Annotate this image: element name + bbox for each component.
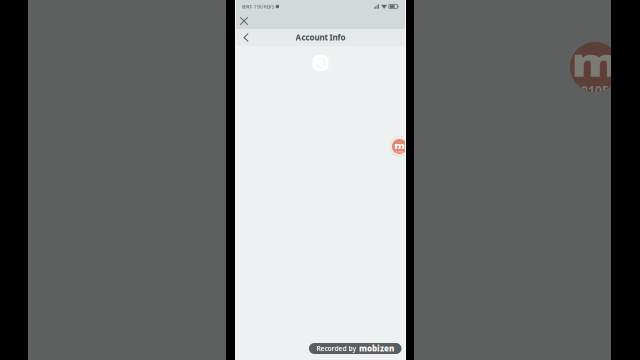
button[interactable]: Back <box>238 29 254 46</box>
staticText: 8:41 <box>242 3 252 10</box>
staticText: Account Info <box>295 32 345 43</box>
staticText: 0105 <box>581 82 609 98</box>
staticText: m <box>574 34 615 89</box>
staticText: Recorded by <box>316 344 356 353</box>
button[interactable]: Mobizen recorder <box>389 136 410 157</box>
staticText: 190 KB/s <box>254 3 275 10</box>
button[interactable]: Close <box>236 13 251 28</box>
staticText: m <box>395 139 404 152</box>
staticText: 0105 <box>395 150 403 153</box>
staticText: mobizen <box>359 343 394 354</box>
